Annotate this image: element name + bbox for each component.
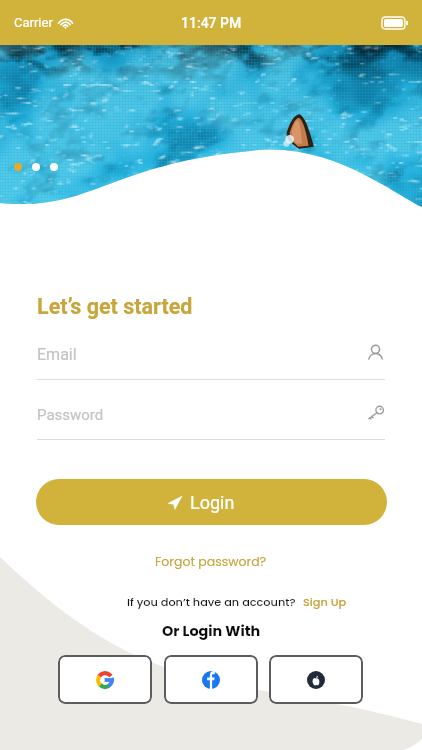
button[interactable]: Sign in with Google — [58, 655, 152, 704]
staticText: 11:47 PM — [181, 15, 242, 31]
staticText: If you don’t have an account? — [127, 594, 296, 610]
button[interactable]: Login — [36, 479, 387, 525]
button[interactable]: Sign in with Facebook — [164, 655, 258, 704]
button[interactable]: Sign in with Apple — [269, 655, 363, 704]
other: Password — [366, 404, 385, 423]
other: Account — [366, 344, 385, 363]
button[interactable]: Forgot password? — [149, 550, 273, 573]
staticText: Email — [37, 345, 77, 364]
staticText: Login — [190, 492, 235, 513]
button[interactable]: Sign Up — [303, 594, 347, 610]
staticText: Carrier — [14, 15, 53, 30]
staticText: Let’s get started — [37, 294, 193, 319]
staticText: Password — [37, 406, 104, 424]
staticText: Or Login With — [162, 621, 261, 641]
